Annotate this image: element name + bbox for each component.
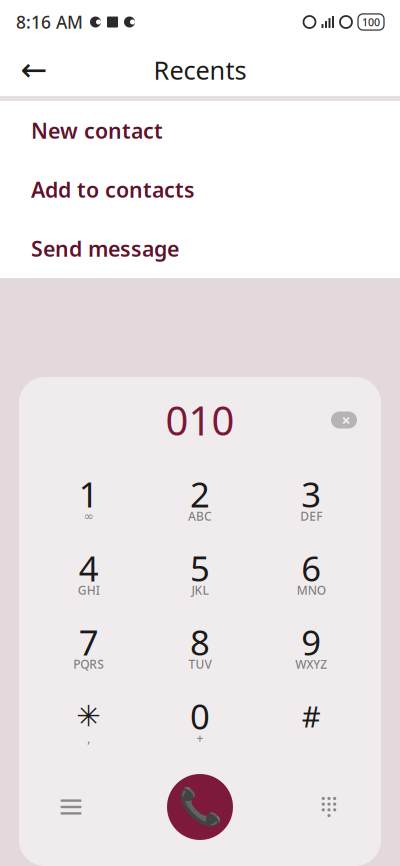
button[interactable]: ✳ [33, 685, 144, 759]
staticText: 1 [79, 471, 99, 517]
staticText: 8 [190, 619, 210, 665]
staticText: + [196, 730, 203, 746]
staticText: 6 [301, 545, 321, 591]
staticText: Add to contacts [31, 175, 195, 204]
button[interactable]: 2 [144, 463, 256, 537]
staticText: 9 [301, 619, 321, 665]
staticText: New contact [31, 116, 163, 145]
button[interactable]: 7 [33, 611, 144, 685]
button[interactable]: Add to contacts [0, 160, 400, 219]
staticText: ‚ [87, 730, 90, 746]
button[interactable]: 1 [33, 463, 144, 537]
staticText: 2 [190, 471, 210, 517]
staticText: 4 [79, 545, 99, 591]
staticText: ✳ [76, 699, 101, 733]
staticText: 3 [301, 471, 321, 517]
staticText: 010 [165, 393, 234, 446]
button[interactable]: 8 [144, 611, 256, 685]
button[interactable]: 4 [33, 537, 144, 611]
staticText: 5 [190, 545, 210, 591]
staticText: 8:16 AM [16, 10, 83, 33]
staticText: ∞ [84, 509, 94, 523]
staticText: TUV [188, 656, 211, 672]
staticText: 📞 [177, 786, 222, 827]
button[interactable]: 6 [256, 537, 367, 611]
staticText: WXYZ [295, 656, 327, 672]
staticText: Recents [153, 53, 246, 87]
button[interactable]: 9 [256, 611, 367, 685]
staticText: 100 [362, 15, 380, 29]
staticText: ABC [188, 508, 212, 524]
button[interactable]: Back [10, 46, 58, 94]
button[interactable]: New contact [0, 101, 400, 160]
button[interactable]: 3 [256, 463, 367, 537]
staticText: ← [20, 52, 47, 88]
button[interactable]: Delete [321, 400, 367, 440]
button[interactable]: Hide keypad [299, 777, 359, 837]
staticText: GHI [78, 582, 100, 598]
button[interactable]: Call [160, 767, 240, 847]
staticText: MNO [297, 582, 326, 598]
staticText: × [341, 409, 350, 431]
staticText: PQRS [73, 656, 104, 672]
staticText: DEF [300, 508, 322, 524]
button[interactable]: # [256, 685, 367, 759]
staticText: JKL [191, 582, 208, 598]
staticText: 7 [79, 619, 99, 665]
button[interactable]: 0 [144, 685, 256, 759]
staticText: 0 [190, 693, 210, 739]
staticText: # [302, 696, 321, 735]
button[interactable]: 5 [144, 537, 256, 611]
button[interactable]: Call log [41, 777, 101, 837]
button[interactable]: Send message [0, 219, 400, 278]
staticText: Send message [31, 234, 179, 263]
